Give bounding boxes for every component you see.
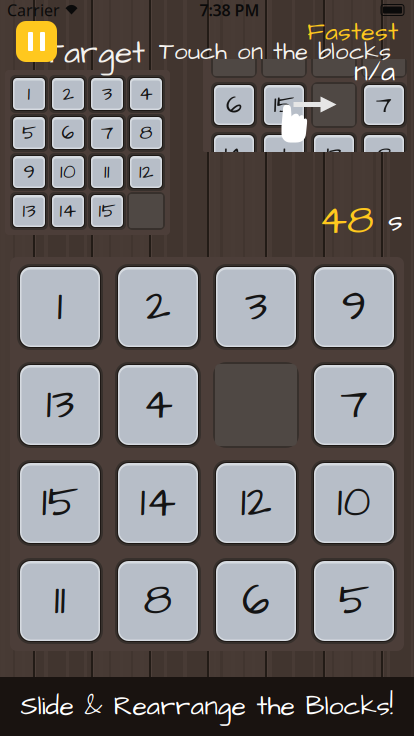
button[interactable]: 8 — [117, 560, 199, 642]
staticText: 6 — [61, 119, 74, 147]
staticText: 4 — [143, 374, 173, 435]
button[interactable]: 9 — [12, 155, 46, 189]
button[interactable]: 6 — [51, 116, 85, 150]
staticText: 6 — [242, 570, 270, 631]
button[interactable]: 7 — [313, 364, 395, 446]
button[interactable]: 3 — [215, 266, 297, 348]
staticText: 15 — [98, 197, 115, 225]
staticText: n/a — [354, 52, 395, 91]
staticText: 7 — [101, 119, 113, 147]
staticText: 15 — [41, 472, 78, 533]
staticText: 11 — [54, 570, 66, 631]
staticText: 11 — [104, 158, 110, 186]
staticText: 6 — [226, 87, 242, 123]
button[interactable]: 7 — [363, 84, 405, 126]
button[interactable]: 8 — [363, 134, 405, 176]
button[interactable]: 3 — [90, 77, 124, 111]
button[interactable]: 1 — [19, 266, 101, 348]
button[interactable]: 4 — [117, 364, 199, 446]
button[interactable]: 14 — [117, 462, 199, 544]
button[interactable]: 10 — [313, 462, 395, 544]
staticText: s — [388, 201, 403, 241]
staticText: 7 — [376, 87, 392, 123]
staticText: 8 — [139, 119, 152, 147]
button[interactable]: 15 — [90, 194, 124, 228]
staticText: 12 — [240, 472, 271, 533]
button[interactable]: 15 — [19, 462, 101, 544]
staticText: 10 — [60, 158, 76, 186]
staticText: 7:38 PM — [199, 0, 259, 21]
staticText: Touch on the blocks — [159, 35, 391, 69]
button[interactable]: 13 — [19, 364, 101, 446]
button[interactable]: 8 — [129, 116, 163, 150]
staticText: 1 — [282, 137, 285, 173]
button[interactable]: Pause — [16, 21, 57, 62]
button[interactable]: 2 — [117, 266, 199, 348]
button[interactable]: 14 — [213, 134, 255, 176]
staticText: 5 — [22, 119, 36, 147]
staticText: 8 — [143, 570, 172, 631]
staticText: 1 — [57, 276, 63, 337]
button[interactable]: 12 — [215, 462, 297, 544]
button[interactable]: 1 — [12, 77, 46, 111]
button[interactable]: 5 — [12, 116, 46, 150]
button[interactable]: 13 — [313, 134, 355, 176]
staticText: 14 — [224, 137, 244, 173]
staticText: 2 — [145, 276, 170, 337]
staticText: 15 — [273, 87, 294, 123]
staticText: 1 — [27, 80, 30, 108]
button[interactable]: 7 — [90, 116, 124, 150]
staticText: 3 — [245, 276, 267, 337]
staticText: 14 — [140, 472, 176, 533]
button[interactable]: 15 — [263, 84, 305, 126]
button[interactable]: 4 — [129, 77, 163, 111]
staticText: Fastest — [307, 14, 398, 50]
button[interactable]: 14 — [51, 194, 85, 228]
button[interactable]: 9 — [313, 266, 395, 348]
staticText: 2 — [62, 80, 73, 108]
staticText: 4 — [139, 80, 153, 108]
staticText: 13 — [46, 374, 74, 435]
button[interactable]: 1 — [263, 134, 305, 176]
staticText: 3 — [102, 80, 112, 108]
button[interactable]: 5 — [313, 560, 395, 642]
staticText: 13 — [22, 197, 35, 225]
staticText: 48 — [319, 192, 374, 250]
staticText: 9 — [23, 158, 34, 186]
staticText: Target — [44, 31, 145, 75]
staticText: 13 — [326, 137, 342, 173]
staticText: Carrier — [7, 0, 60, 21]
staticText: 8 — [376, 137, 392, 173]
button[interactable]: 11 — [19, 560, 101, 642]
button[interactable]: 10 — [51, 155, 85, 189]
button[interactable]: 6 — [215, 560, 297, 642]
staticText: 7 — [340, 374, 367, 435]
staticText: 5 — [338, 570, 369, 631]
button[interactable]: 11 — [90, 155, 124, 189]
button[interactable]: 2 — [51, 77, 85, 111]
staticText: 12 — [139, 158, 153, 186]
staticText: 9 — [341, 276, 366, 337]
staticText: Slide & Rearrange the Blocks! — [20, 688, 393, 725]
button[interactable]: 13 — [12, 194, 46, 228]
staticText: 14 — [59, 197, 76, 225]
button[interactable]: 6 — [213, 84, 255, 126]
button[interactable]: 12 — [129, 155, 163, 189]
staticText: 10 — [337, 472, 371, 533]
